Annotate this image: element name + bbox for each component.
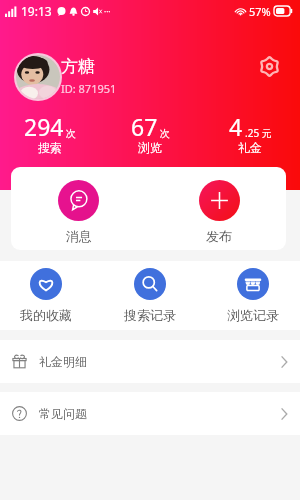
staticText: 4 [229, 111, 243, 142]
staticText: 我的收藏 [20, 307, 72, 323]
staticText: 礼金 [238, 140, 262, 155]
staticText: 发布 [206, 228, 232, 244]
staticText: 19:13 [21, 3, 52, 19]
staticText: 方糖 [61, 56, 95, 77]
staticText: 浏览 [138, 140, 162, 155]
staticText: 礼金明细 [39, 354, 87, 369]
button[interactable]: 4 [200, 111, 300, 157]
button[interactable]: Settings [255, 52, 283, 80]
staticText: ID: 871951 [61, 81, 117, 96]
button[interactable]: 67 [100, 111, 200, 157]
button[interactable]: 常见问题 [0, 392, 300, 435]
staticText: 57% [249, 4, 271, 19]
button[interactable]: 消息 [11, 167, 146, 244]
staticText: .25 元 [245, 126, 272, 140]
staticText: 次 [66, 127, 76, 140]
button[interactable]: 搜索记录 [100, 268, 200, 323]
staticText: 浏览记录 [227, 307, 279, 323]
staticText: 294 [24, 111, 64, 142]
staticText: 搜索 [38, 140, 62, 155]
button[interactable]: 浏览记录 [200, 268, 300, 323]
button[interactable]: 发布 [149, 167, 286, 244]
button[interactable]: 我的收藏 [0, 268, 100, 323]
button[interactable]: 礼金明细 [0, 340, 300, 383]
staticText: 常见问题 [39, 406, 87, 421]
staticText: 次 [160, 127, 170, 140]
staticText: 搜索记录 [124, 307, 176, 323]
staticText: ··· [104, 6, 111, 17]
button[interactable]: Profile photo [14, 53, 62, 101]
button[interactable]: 294 [0, 111, 100, 157]
staticText: 消息 [66, 228, 92, 244]
staticText: 67 [131, 111, 158, 142]
